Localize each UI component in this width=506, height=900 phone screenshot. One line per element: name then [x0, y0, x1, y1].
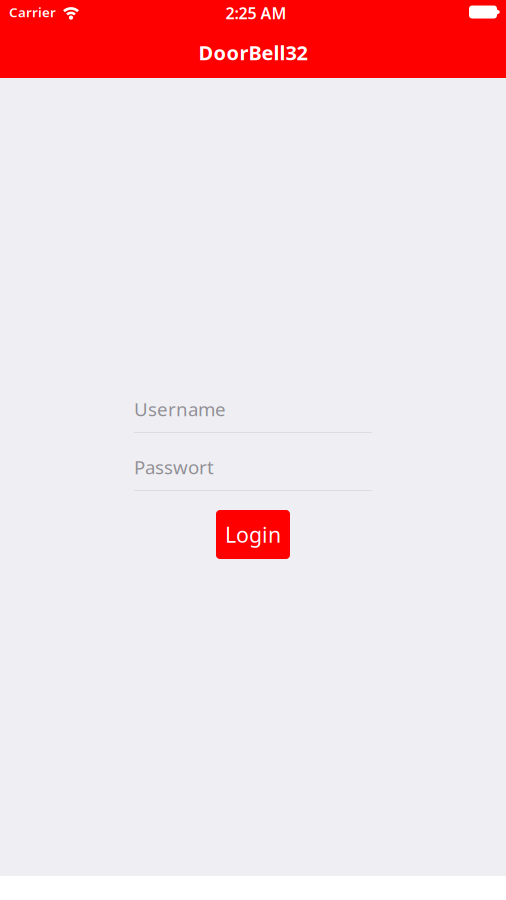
button[interactable]: Passwort — [134, 457, 372, 491]
staticText: Username — [134, 397, 226, 421]
button[interactable]: Username — [134, 399, 372, 433]
staticText: Login — [225, 520, 281, 549]
staticText: 2:25 AM — [225, 2, 286, 24]
staticText: Carrier — [9, 3, 56, 21]
staticText: Passwort — [134, 455, 214, 479]
button[interactable]: Login — [216, 510, 290, 559]
staticText: DoorBell32 — [198, 39, 307, 66]
